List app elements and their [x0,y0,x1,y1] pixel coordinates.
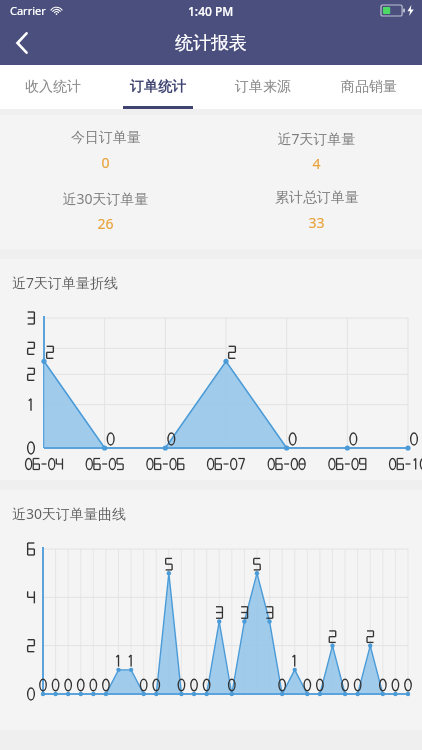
staticText: 今日订单量 [71,129,141,147]
button[interactable]: 订单统计 [105,65,210,109]
staticText: 33 [308,213,325,232]
staticText: 近30天订单量曲线 [12,504,127,523]
button[interactable]: 今日订单量 [0,129,211,172]
staticText: 0 [101,153,110,172]
staticText: 近7天订单量 [277,129,356,148]
button[interactable]: 累计总订单量 [211,189,422,232]
staticText: 1:40 PM [188,3,234,19]
staticText: 累计总订单量 [275,189,359,207]
staticText: 近30天订单量 [62,189,149,208]
staticText: 收入统计 [25,78,81,96]
staticText: 近7天订单量折线 [12,273,119,292]
button[interactable]: 近7天订单量 [211,129,422,173]
button[interactable]: 订单来源 [210,65,316,109]
staticText: 商品销量 [341,78,397,96]
button[interactable]: Back [0,21,44,65]
button[interactable]: 收入统计 [0,65,105,109]
staticText: 订单统计 [130,78,186,96]
staticText: Carrier [10,3,46,18]
button[interactable]: 商品销量 [316,65,422,109]
button[interactable]: 近30天订单量 [0,189,211,233]
staticText: 4 [312,154,321,173]
staticText: 订单来源 [235,78,291,96]
staticText: 统计报表 [175,32,247,55]
staticText: 26 [97,214,114,233]
